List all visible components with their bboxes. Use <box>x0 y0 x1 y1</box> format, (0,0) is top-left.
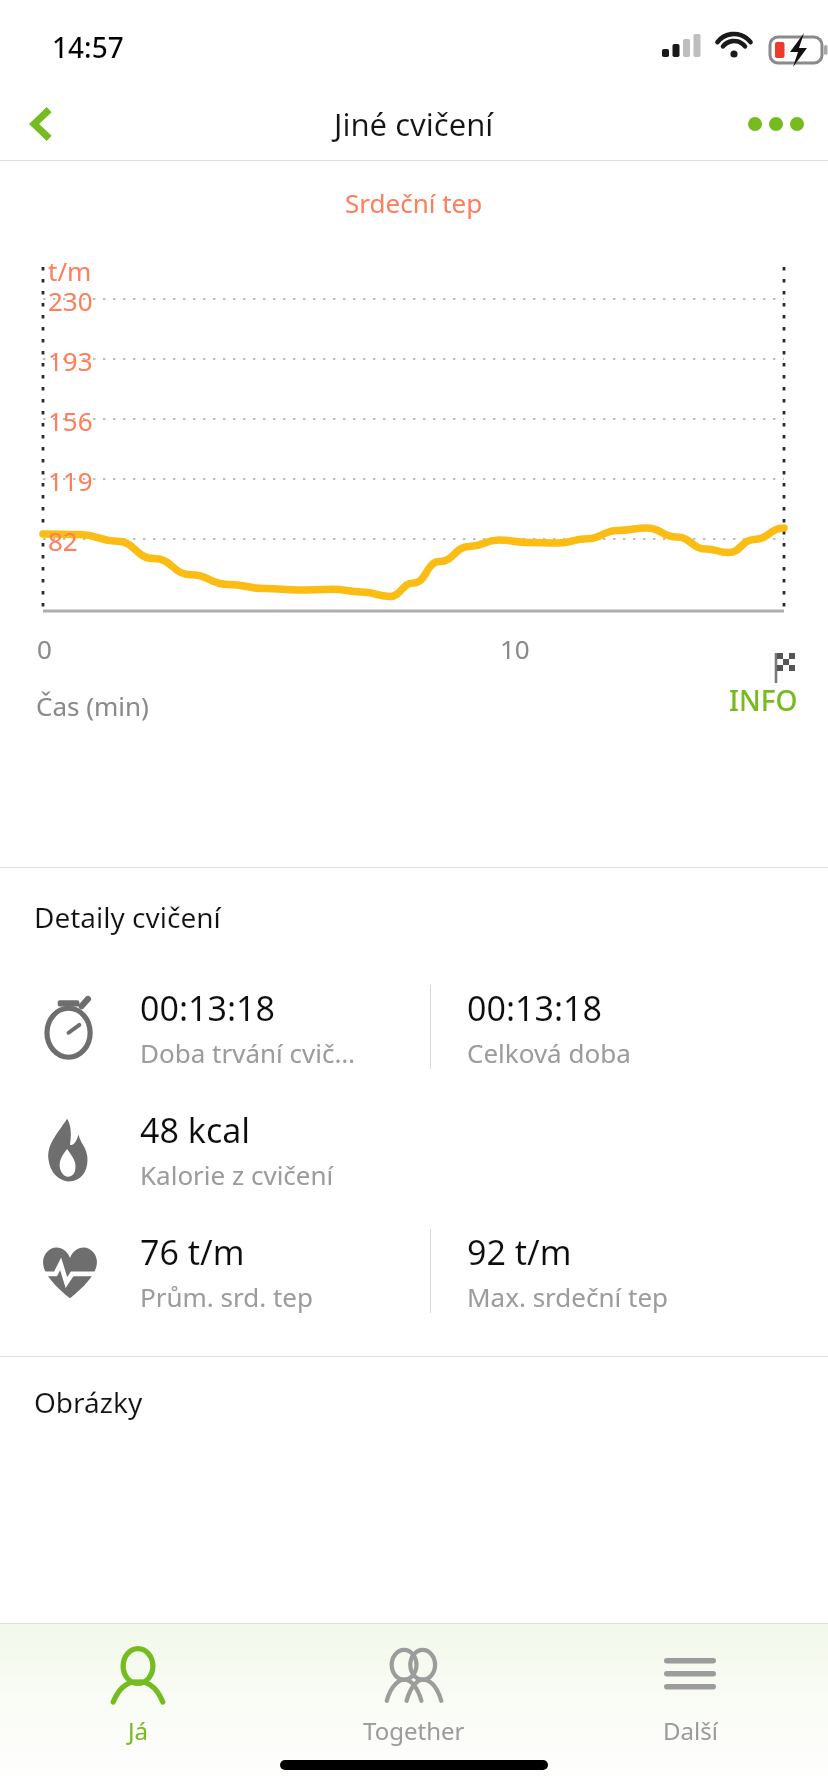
button[interactable]: More options <box>738 88 814 160</box>
button[interactable]: 76 t/m <box>0 1210 828 1332</box>
staticText: 0 <box>37 631 52 666</box>
staticText: Doba trvání cvič… <box>140 1035 355 1070</box>
staticText: 92 t/m <box>467 1229 572 1275</box>
button[interactable]: Já <box>0 1638 276 1753</box>
staticText: Další <box>663 1714 718 1747</box>
button[interactable]: Back <box>4 88 80 160</box>
button[interactable]: 00:13:18 <box>0 966 828 1088</box>
staticText: Detaily cvičení <box>34 898 221 936</box>
staticText: 230 <box>48 283 93 318</box>
staticText: 10 <box>500 631 530 666</box>
staticText: 48 kcal <box>140 1107 251 1153</box>
staticText: Prům. srd. tep <box>140 1279 314 1314</box>
staticText: Celková doba <box>467 1035 631 1070</box>
staticText: Obrázky <box>34 1383 143 1421</box>
staticText: 82 <box>48 523 78 558</box>
button[interactable]: INFO <box>729 681 798 719</box>
button[interactable]: 48 kcal <box>0 1088 828 1210</box>
staticText: Max. srdeční tep <box>467 1279 669 1314</box>
staticText: INFO <box>729 681 798 719</box>
staticText: 00:13:18 <box>467 985 602 1031</box>
staticText: Srdeční tep <box>345 185 483 220</box>
staticText: 193 <box>48 343 93 378</box>
button[interactable]: Together <box>276 1638 552 1753</box>
staticText: 156 <box>48 403 93 438</box>
staticText: 119 <box>48 463 93 498</box>
staticText: Já <box>128 1714 149 1747</box>
staticText: Together <box>363 1714 465 1747</box>
staticText: 14:57 <box>52 28 124 66</box>
staticText: Jiné cvičení <box>334 103 494 145</box>
staticText: t/m <box>48 253 92 288</box>
staticText: Čas (min) <box>36 688 149 723</box>
staticText: Kalorie z cvičení <box>140 1157 334 1192</box>
button[interactable]: Další <box>552 1638 828 1753</box>
staticText: 00:13:18 <box>140 985 275 1031</box>
staticText: 76 t/m <box>140 1229 245 1275</box>
